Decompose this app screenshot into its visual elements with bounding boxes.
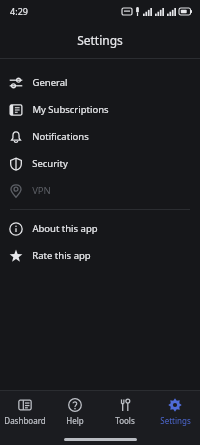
button[interactable]: Rate this app bbox=[0, 242, 200, 269]
button[interactable]: General bbox=[0, 69, 200, 96]
button[interactable]: Tools bbox=[100, 391, 150, 433]
staticText: Settings bbox=[160, 415, 191, 426]
staticText: 4:29 bbox=[10, 5, 28, 17]
staticText: Security bbox=[32, 157, 68, 170]
button[interactable]: Help bbox=[50, 391, 100, 433]
button[interactable]: My Subscriptions bbox=[0, 96, 200, 123]
staticText: Rate this app bbox=[32, 249, 91, 262]
button[interactable]: Security bbox=[0, 150, 200, 177]
staticText: General bbox=[32, 76, 68, 89]
button[interactable]: Notifications bbox=[0, 123, 200, 150]
button: VPN bbox=[0, 177, 200, 204]
staticText: Dashboard bbox=[4, 415, 46, 426]
staticText: Tools bbox=[115, 415, 135, 426]
staticText: Notifications bbox=[32, 130, 89, 143]
button[interactable]: Dashboard bbox=[0, 391, 50, 433]
button[interactable]: About this app bbox=[0, 215, 200, 242]
staticText: Help bbox=[66, 415, 84, 426]
staticText: My Subscriptions bbox=[32, 103, 109, 116]
button[interactable]: Settings bbox=[150, 391, 200, 433]
staticText: About this app bbox=[32, 222, 98, 235]
staticText: Settings bbox=[77, 32, 123, 48]
staticText: VPN bbox=[32, 184, 51, 197]
